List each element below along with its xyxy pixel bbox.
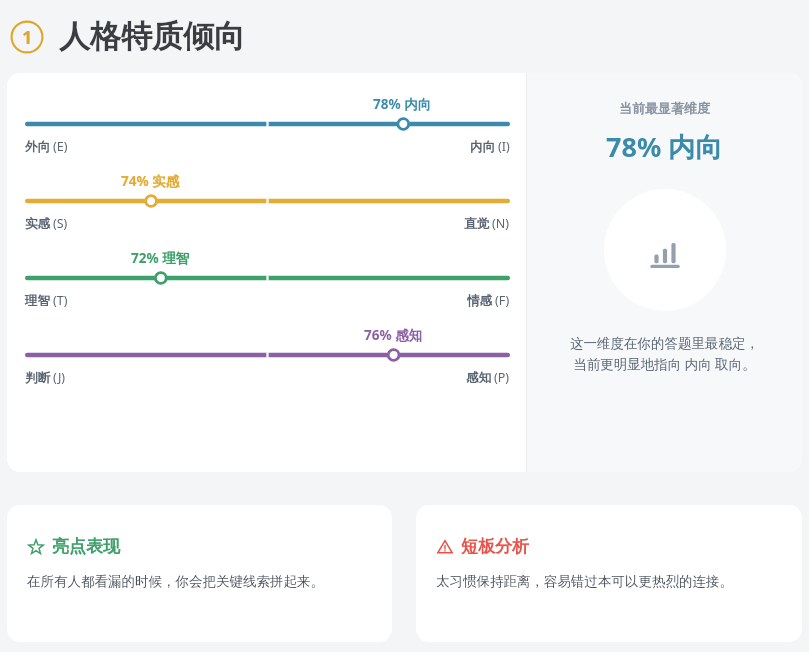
staticText: 理智	[25, 293, 50, 309]
staticText: 当前最显著维度	[619, 100, 710, 116]
staticText: 人格特质倾向	[59, 17, 245, 56]
staticText: 实感	[25, 216, 50, 232]
staticText: 78% 内向	[373, 95, 432, 113]
staticText: 72% 理智	[131, 249, 190, 267]
button[interactable]: 亮点表现	[7, 505, 392, 642]
staticText: (P)	[494, 369, 510, 386]
staticText: 76% 感知	[364, 326, 423, 344]
staticText: 1	[22, 25, 33, 50]
staticText: 感知	[466, 370, 491, 386]
staticText: 太习惯保持距离，容易错过本可以更热烈的连接。	[436, 573, 733, 590]
staticText: 这一维度在你的答题里最稳定， 当前更明显地指向 内向 取向。	[570, 335, 759, 373]
other: 亮点表现	[27, 538, 44, 555]
staticText: (F)	[495, 292, 510, 309]
other: 短板分析	[436, 538, 453, 555]
button[interactable]: 短板分析	[416, 505, 802, 642]
staticText: 短板分析	[461, 536, 529, 557]
staticText: (S)	[53, 215, 68, 232]
staticText: 在所有人都看漏的时候，你会把关键线索拼起来。	[27, 573, 324, 590]
staticText: 内向	[470, 139, 495, 155]
staticText: (I)	[498, 138, 510, 155]
staticText: 判断	[25, 370, 50, 386]
staticText: 78% 内向	[606, 128, 723, 165]
staticText: 情感	[467, 293, 492, 309]
staticText: 外向	[25, 139, 50, 155]
staticText: (T)	[53, 292, 68, 309]
button[interactable]	[25, 193, 510, 209]
button[interactable]	[25, 347, 510, 363]
staticText: (N)	[492, 215, 510, 232]
button[interactable]	[25, 116, 510, 132]
button[interactable]	[25, 270, 510, 286]
staticText: (E)	[53, 138, 68, 155]
staticText: 直觉	[464, 216, 489, 232]
staticText: 亮点表现	[52, 536, 120, 557]
staticText: (J)	[53, 369, 66, 386]
staticText: 74% 实感	[121, 172, 180, 190]
